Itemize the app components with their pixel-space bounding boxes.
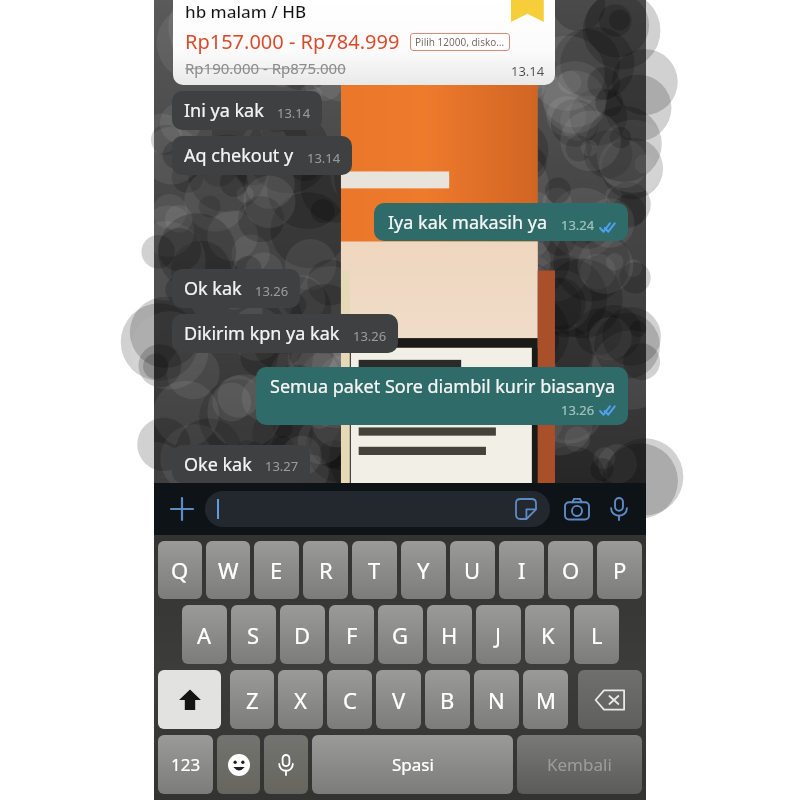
button[interactable]: W [206,541,250,599]
staticText: J [495,620,502,650]
button[interactable]: R [303,541,348,599]
button[interactable]: U [450,541,495,599]
staticText: D [294,620,311,650]
staticText: Iya kak makasih ya [388,210,548,235]
button[interactable]: Semua paket Sore diambil kurir biasanya [256,367,628,425]
staticText: A [197,620,212,650]
staticText: 13.14 [511,62,545,80]
staticText: Aq chekout y [184,143,294,168]
button[interactable]: Aq chekout y [172,136,352,175]
staticText: Spasi [392,753,434,776]
staticText: P [613,555,627,585]
staticText: 13.26 [561,401,595,419]
staticText: Semua paket Sore diambil kurir biasanya [270,374,616,399]
button[interactable]: S [231,605,276,664]
button[interactable]: Backspace [578,670,642,729]
staticText: X [294,685,307,715]
staticText: C [343,685,357,715]
button[interactable]: Iya kak makasih ya [374,203,628,241]
staticText: F [346,620,358,650]
staticText: Rp157.000 - Rp784.999 [185,28,400,55]
button[interactable]: Sticker [205,491,550,527]
button[interactable]: L [574,605,619,664]
button[interactable]: H [427,605,472,664]
staticText: 13.27 [265,457,299,475]
staticText: 13.26 [255,282,289,300]
staticText: T [368,555,381,585]
button[interactable]: Spasi [312,735,513,794]
staticText: Rp190.000 - Rp875.000 [185,58,346,78]
staticText: B [440,685,455,715]
staticText: S [247,620,260,650]
staticText: V [392,685,406,715]
button[interactable]: G [378,605,423,664]
staticText: G [392,620,409,650]
button[interactable]: F [329,605,374,664]
button[interactable]: C [327,670,372,729]
staticText: 13.14 [307,149,341,167]
staticText: Kembali [547,753,612,776]
staticText: N [488,685,505,715]
button[interactable]: Voice message [600,490,638,528]
button[interactable]: Ini ya kak [172,91,322,130]
staticText: Ok kak [184,276,242,301]
button[interactable]: Voice input [264,735,308,794]
staticText: 123 [171,753,201,776]
staticText: Q [171,555,189,585]
button[interactable]: E [254,541,299,599]
button[interactable]: I [499,541,544,599]
button[interactable]: Attach [164,491,200,527]
staticText: Oke kak [184,452,252,476]
staticText: O [562,555,580,585]
button[interactable]: J [476,605,521,664]
staticText: L [591,620,603,650]
button[interactable]: Camera [558,490,596,528]
button[interactable]: Shift [158,670,221,729]
staticText: U [464,555,481,585]
button[interactable]: O [548,541,593,599]
button[interactable]: B [425,670,470,729]
staticText: Z [246,685,259,715]
button[interactable]: Y [401,541,446,599]
staticText: 13.24 [561,216,595,234]
button[interactable]: V [376,670,421,729]
button[interactable]: X [278,670,323,729]
staticText: Pilih 12000, disko… [415,35,505,49]
staticText: M [536,685,556,715]
staticText: hb malam / HB [185,0,307,23]
staticText: R [319,555,333,585]
button[interactable]: P [597,541,642,599]
button[interactable]: D [280,605,325,664]
button[interactable]: Oke kak [172,445,310,483]
button[interactable]: T [352,541,397,599]
button[interactable]: M [523,670,568,729]
staticText: Y [417,555,430,585]
button[interactable]: 123 [158,735,213,794]
staticText: 13.14 [277,104,311,122]
staticText: 13.26 [353,327,387,345]
staticText: W [218,555,239,585]
button[interactable]: K [525,605,570,664]
button[interactable]: N [474,670,519,729]
staticText: K [541,620,555,650]
button[interactable]: Z [230,670,274,729]
button[interactable]: Emoji [217,735,260,794]
button[interactable]: Ok kak [172,269,300,308]
button[interactable]: Dikirim kpn ya kak [172,314,398,353]
staticText: Dikirim kpn ya kak [184,321,340,346]
staticText: E [270,555,283,585]
button[interactable]: hb malam / HB [173,0,555,85]
staticText: I [518,555,526,585]
button[interactable]: Kembali [517,735,642,794]
staticText: H [441,620,458,650]
staticText: Ini ya kak [184,98,264,123]
button[interactable]: Q [158,541,202,599]
button[interactable]: Sticker [512,495,540,523]
button[interactable]: A [182,605,227,664]
